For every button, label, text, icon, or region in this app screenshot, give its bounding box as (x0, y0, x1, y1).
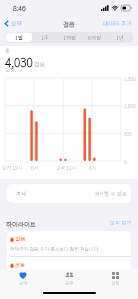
staticText: 오전 12시 (2, 164, 23, 171)
staticText: 현재까지 걸음 수가 평소보다 훨씬 적습니다. (10, 245, 100, 252)
staticText: 1일 (15, 34, 23, 42)
staticText: 500 (124, 130, 132, 137)
button[interactable]: 걸음 (7, 231, 131, 256)
staticText: 계산할 수 없음 (94, 190, 127, 198)
button[interactable]: 1일 (6, 33, 32, 42)
button[interactable]: 1년 (107, 33, 132, 42)
staticText: 6시 (89, 164, 97, 171)
staticText: 요약 (11, 19, 23, 28)
staticText: 1년 (116, 34, 124, 42)
staticText: 공유 (65, 280, 74, 287)
staticText: 1개월 (63, 34, 76, 42)
staticText: 데이터 추가 (103, 19, 132, 28)
button[interactable]: 모두 보기 (110, 219, 132, 227)
staticText: 0 (124, 158, 127, 165)
staticText: 1주 (41, 34, 49, 42)
staticText: 1,000 (124, 102, 136, 109)
button[interactable]: 추세 (7, 184, 131, 203)
staticText: 걸음 (34, 60, 46, 69)
button[interactable]: 6개월 (82, 33, 107, 42)
staticText: 모두 보기 (110, 219, 132, 227)
staticText: 검색 (111, 280, 120, 287)
staticText: 추세 (16, 190, 27, 198)
staticText: 4,030 (5, 53, 33, 70)
staticText: 6시 (31, 164, 39, 171)
staticText: 걸음 (63, 19, 75, 28)
button[interactable]: Browse (92, 269, 138, 299)
staticText: 운동 (15, 261, 26, 269)
staticText: 걸음 (15, 235, 26, 243)
staticText: 6개월 (88, 34, 101, 42)
button[interactable]: 1주 (32, 33, 57, 42)
staticText: 총 (5, 47, 11, 55)
button[interactable]: 데이터 추가 (101, 18, 134, 29)
staticText: 오후 12시 (56, 164, 77, 171)
staticText: 1,500 (124, 75, 136, 82)
button[interactable]: 운동 (7, 257, 131, 276)
staticText: 요약 (19, 280, 28, 287)
staticText: 오늘 (5, 66, 16, 74)
button[interactable]: 1개월 (57, 33, 82, 42)
button[interactable]: 요약 (2, 18, 25, 29)
staticText: 8:46 (13, 3, 26, 13)
staticText: 하이라이트 (6, 219, 36, 228)
button[interactable]: Sharing (46, 269, 92, 299)
button[interactable]: Summary (0, 269, 46, 299)
